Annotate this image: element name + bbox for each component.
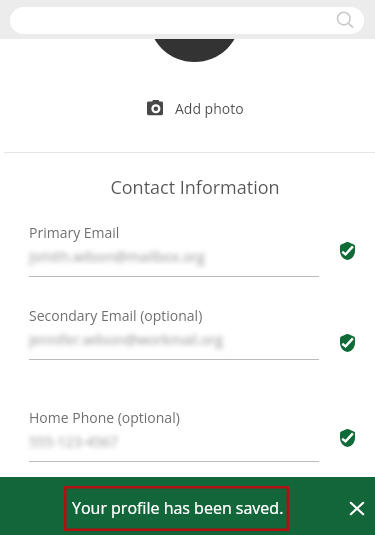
staticText: Contact Information: [110, 175, 280, 200]
button[interactable]: Profile photo: [148, 0, 241, 62]
button[interactable]: Add photo: [140, 92, 250, 122]
staticText: jennifer.wilson@workmail.org: [29, 330, 223, 349]
staticText: Primary Email: [29, 223, 120, 242]
button[interactable]: Dismiss: [340, 491, 374, 525]
staticText: jsmith.wilson@mailbox.org: [29, 247, 205, 266]
staticText: Your profile has been saved.: [72, 497, 284, 519]
staticText: Home Phone (optional): [29, 408, 180, 427]
staticText: 555-123-4567: [29, 432, 119, 451]
staticText: Add photo: [175, 99, 244, 118]
staticText: Secondary Email (optional): [29, 306, 203, 325]
button[interactable]: Search: [10, 7, 364, 34]
